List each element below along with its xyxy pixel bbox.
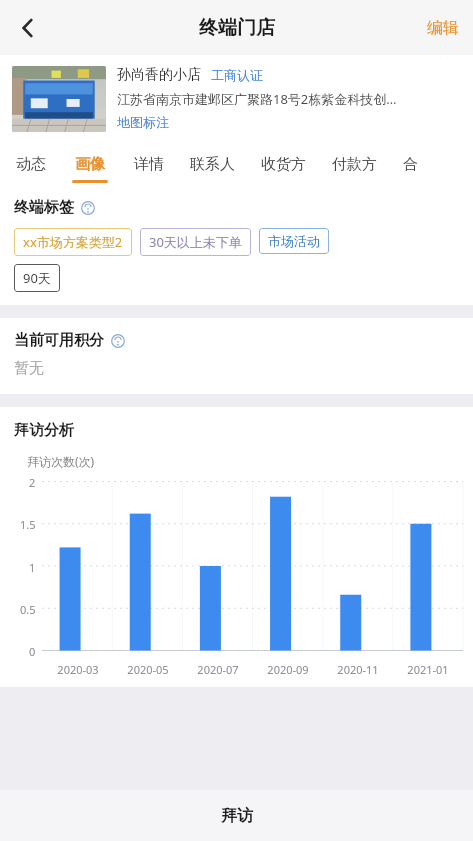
staticText: 1.5 [20, 517, 36, 530]
button[interactable]: 工商认证 [211, 67, 263, 83]
staticText: 工商认证 [211, 67, 263, 83]
staticText: 2020-09 [267, 662, 309, 677]
staticText: 画像 [75, 155, 105, 174]
staticText: 动态 [16, 155, 46, 174]
staticText: 2021-01 [407, 662, 449, 677]
staticText: 0 [29, 644, 36, 657]
staticText: 暂无 [14, 359, 44, 378]
staticText: 2020-07 [197, 662, 239, 677]
staticText: 2020-11 [337, 662, 379, 677]
staticText: 2020-05 [127, 662, 169, 677]
staticText: 1 [29, 560, 36, 573]
button[interactable]: Help [81, 201, 95, 215]
staticText: 收货方 [261, 155, 306, 174]
staticText: 江苏省南京市建邺区广聚路18号2栋紫金科技创… [117, 90, 397, 108]
staticText: 市场活动 [268, 233, 320, 249]
staticText: 90天 [23, 269, 51, 287]
staticText: 当前可用积分 [14, 331, 104, 350]
button[interactable]: 动态 [0, 143, 59, 186]
button[interactable]: 画像 [59, 143, 121, 186]
button[interactable]: 拜访 [0, 790, 473, 841]
staticText: 拜访分析 [14, 421, 74, 440]
button[interactable]: 地图标注 [117, 114, 169, 130]
button[interactable]: 编辑 [413, 6, 473, 50]
staticText: 联系人 [190, 155, 235, 174]
staticText: 付款方 [332, 155, 377, 174]
staticText: 详情 [134, 155, 164, 174]
button[interactable]: 孙尚香的小店 [0, 55, 473, 143]
staticText: 终端门店 [199, 16, 275, 40]
staticText: 拜访 [221, 806, 253, 826]
button[interactable]: 90天 [14, 264, 60, 292]
button[interactable]: 合 [390, 143, 431, 186]
button[interactable]: Back [4, 4, 52, 52]
staticText: 2 [29, 475, 36, 488]
staticText: 拜访次数(次) [27, 453, 95, 469]
button[interactable]: 收货方 [248, 143, 319, 186]
staticText: 编辑 [427, 18, 459, 38]
staticText: 孙尚香的小店 [117, 66, 201, 84]
staticText: 0.5 [20, 602, 36, 615]
button[interactable]: 联系人 [177, 143, 248, 186]
staticText: xx市场方案类型2 [23, 233, 123, 251]
staticText: 地图标注 [117, 114, 169, 130]
button[interactable]: 付款方 [319, 143, 390, 186]
button[interactable]: 详情 [121, 143, 177, 186]
button[interactable]: Help [111, 334, 125, 348]
button[interactable]: xx市场方案类型2 [14, 228, 132, 256]
staticText: 合 [403, 155, 418, 174]
button[interactable]: 市场活动 [259, 228, 329, 254]
button[interactable]: 30天以上未下单 [140, 228, 251, 256]
staticText: 终端标签 [14, 198, 74, 217]
staticText: 2020-03 [57, 662, 99, 677]
staticText: 30天以上未下单 [149, 233, 242, 251]
